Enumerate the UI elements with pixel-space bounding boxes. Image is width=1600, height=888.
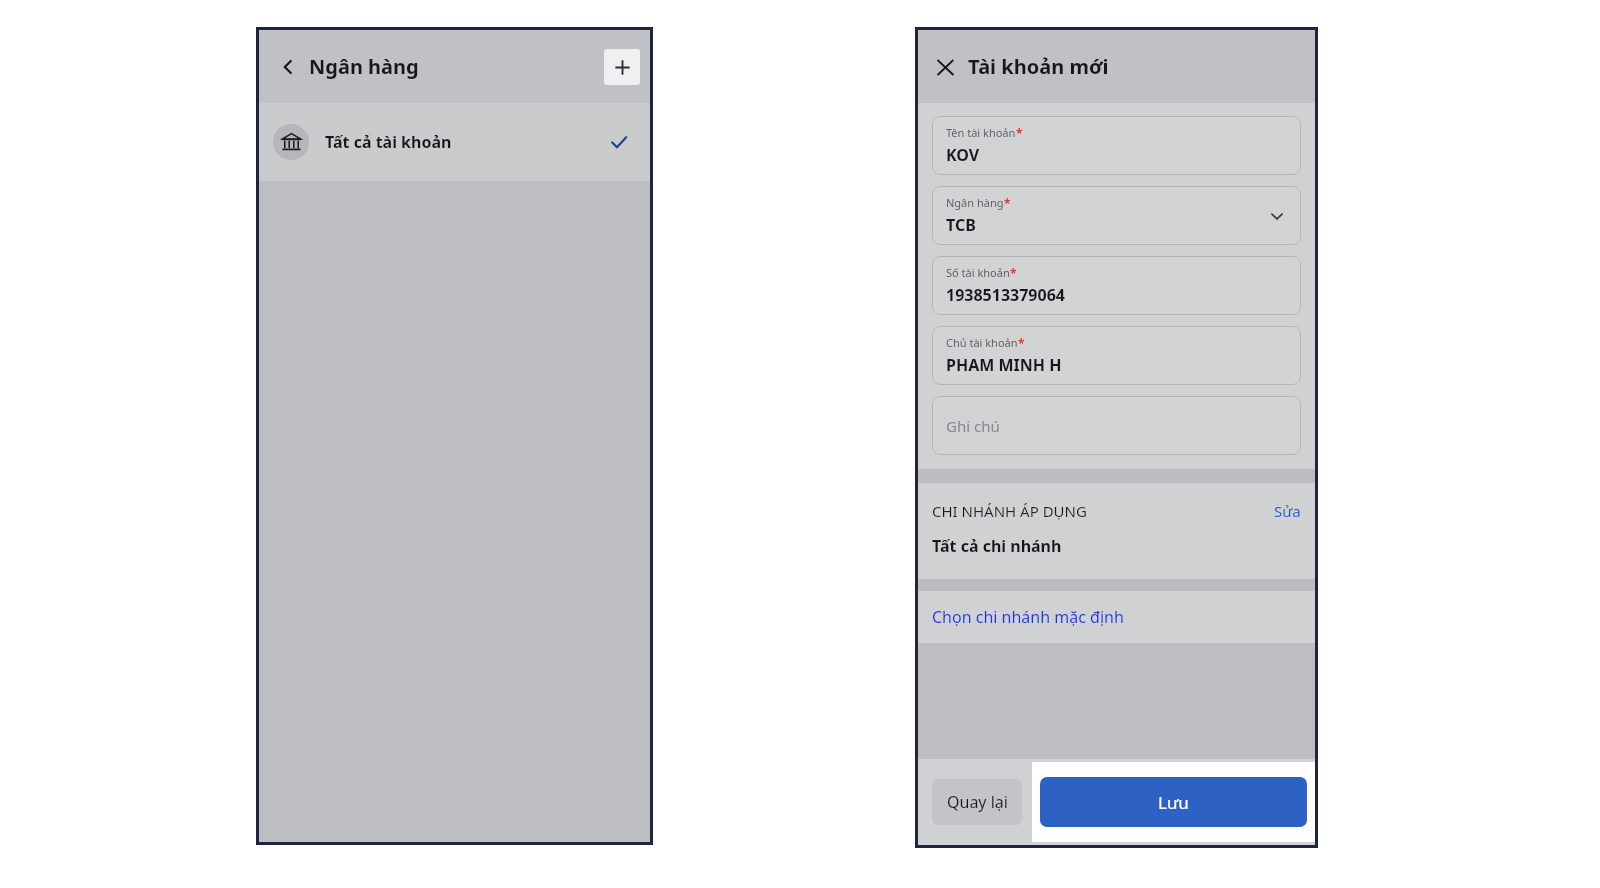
staticText: Quay lại [947,791,1008,813]
staticText: Tên tài khoản [946,125,1016,140]
staticText: Ngân hàng [946,195,1004,210]
staticText: * [1018,335,1025,351]
staticText: Tất cả tài khoản [325,131,452,153]
staticText: Ghi chú [946,416,1000,436]
button[interactable]: Ngân hàng [932,186,1301,245]
button[interactable]: Lưu [1040,777,1307,827]
staticText: 1938513379064 [946,284,1065,306]
button[interactable]: Quay lại [932,779,1022,825]
staticText: Sửa [1274,501,1301,521]
staticText: TCB [946,214,976,236]
button[interactable]: Sửa [1274,501,1301,521]
button[interactable]: Chọn chi nhánh mặc định [918,591,1315,643]
button[interactable]: Số tài khoản [932,256,1301,315]
staticText: * [1010,265,1017,281]
staticText: CHI NHÁNH ÁP DỤNG [932,501,1087,521]
staticText: PHAM MINH H [946,354,1062,376]
button[interactable]: Tất cả tài khoản [259,103,650,181]
staticText: Số tài khoản [946,265,1010,280]
staticText: Ngân hàng [309,53,419,80]
staticText: Lưu [1158,791,1189,814]
staticText: Tài khoản mới [968,53,1109,80]
staticText: * [1016,125,1023,141]
staticText: Tất cả chi nhánh [932,535,1062,557]
button[interactable]: Back [271,50,305,84]
staticText: Chủ tài khoản [946,335,1018,350]
staticText: * [1004,195,1011,211]
button[interactable]: Chủ tài khoản [932,326,1301,385]
button[interactable]: Ghi chú [932,396,1301,455]
staticText: KOV [946,144,980,166]
button[interactable]: Tên tài khoản [932,116,1301,175]
button[interactable]: Add [604,49,640,85]
button[interactable]: Close [930,52,960,82]
staticText: Chọn chi nhánh mặc định [932,606,1124,628]
